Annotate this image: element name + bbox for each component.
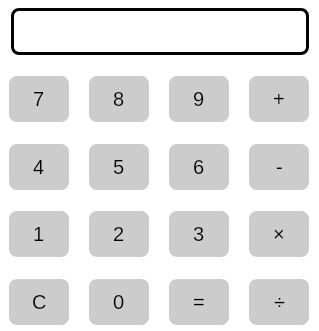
staticText: 0 <box>113 291 125 313</box>
button[interactable]: 4 <box>9 144 69 190</box>
staticText: + <box>273 88 285 110</box>
button[interactable]: 2 <box>89 211 149 257</box>
button[interactable]: 5 <box>89 144 149 190</box>
button[interactable]: 8 <box>89 76 149 122</box>
button[interactable]: 0 <box>89 279 149 325</box>
staticText: × <box>273 223 285 245</box>
staticText: 1 <box>33 223 45 245</box>
button[interactable]: 9 <box>169 76 229 122</box>
staticText: 9 <box>193 88 205 110</box>
button[interactable]: 1 <box>9 211 69 257</box>
staticText: 4 <box>33 156 45 178</box>
button[interactable]: 3 <box>169 211 229 257</box>
button[interactable]: 7 <box>9 76 69 122</box>
button[interactable]: = <box>169 279 229 325</box>
staticText: 3 <box>193 223 205 245</box>
button[interactable]: 6 <box>169 144 229 190</box>
staticText: 5 <box>113 156 125 178</box>
button[interactable]: C <box>9 279 69 325</box>
staticText: 2 <box>113 223 125 245</box>
staticText: 8 <box>113 88 125 110</box>
staticText: C <box>32 291 47 313</box>
button[interactable]: - <box>249 144 309 190</box>
staticText: = <box>193 291 205 313</box>
staticText: 6 <box>193 156 205 178</box>
button[interactable]: ÷ <box>249 279 309 325</box>
staticText: ÷ <box>274 291 285 313</box>
staticText: 7 <box>33 88 45 110</box>
staticText: - <box>276 156 283 178</box>
button[interactable]: + <box>249 76 309 122</box>
button[interactable]: × <box>249 211 309 257</box>
